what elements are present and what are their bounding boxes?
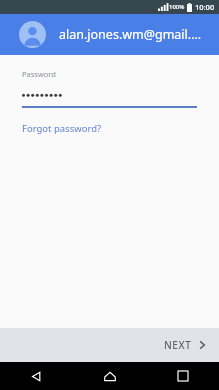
button[interactable]: alan.jones.wm@gmail.... [0,14,219,55]
button[interactable]: NEXT [146,328,219,362]
button[interactable]: Recent apps [146,362,219,390]
button[interactable]: Home [73,362,146,390]
staticText: 10:00 [195,2,215,12]
button[interactable] [22,86,197,104]
staticText: Forgot password? [22,122,102,135]
staticText: 100% [169,3,185,11]
button[interactable]: Forgot password? [22,122,102,135]
staticText: Password [22,69,56,79]
staticText: NEXT [164,338,192,352]
button[interactable]: Back [0,362,73,390]
staticText: alan.jones.wm@gmail.... [59,26,202,43]
